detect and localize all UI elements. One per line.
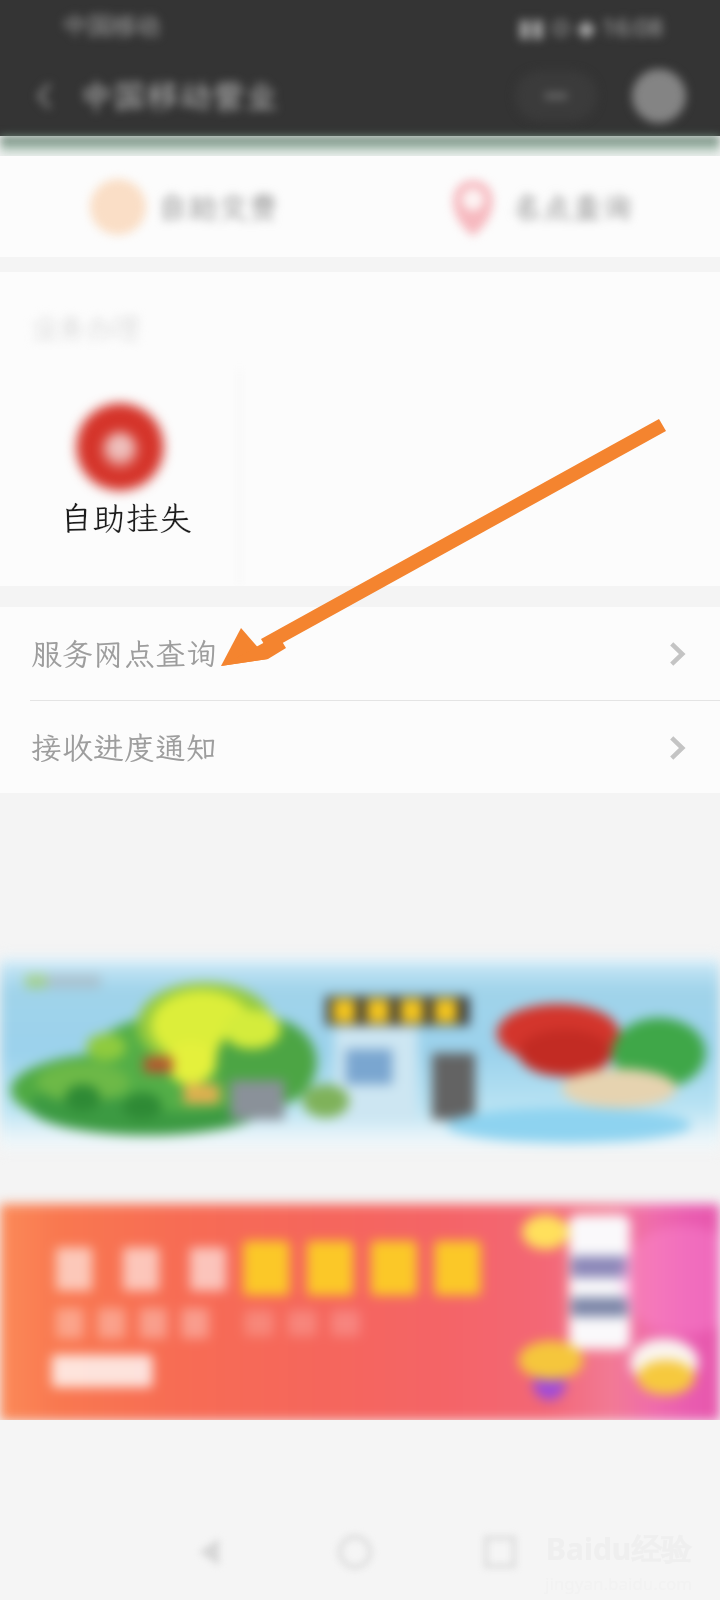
staticText: 名点查询: [512, 187, 632, 227]
button[interactable]: 名点查询: [360, 156, 720, 257]
button[interactable]: 自助交费: [0, 156, 360, 257]
button[interactable]: Account: [630, 68, 684, 122]
button[interactable]: Back: [170, 1512, 250, 1592]
button[interactable]: More options: [513, 70, 595, 120]
staticText: 自助挂失: [60, 496, 192, 539]
staticText: 自助交费: [158, 187, 278, 227]
staticText: 业务办理: [32, 312, 140, 346]
button[interactable]: Promotion banner: [0, 955, 720, 1151]
button[interactable]: Recent apps: [460, 1512, 540, 1592]
button[interactable]: 自助挂失: [0, 370, 239, 586]
button[interactable]: Home: [315, 1512, 395, 1592]
button[interactable]: Back: [10, 80, 78, 148]
staticText: ▮▮ ⊙ ◆ 16:08: [518, 10, 664, 43]
staticText: 中国移动: [64, 11, 160, 41]
button[interactable]: 接收进度通知: [0, 701, 720, 794]
staticText: 服务网点查询: [31, 633, 217, 674]
staticText: 中国移动营业: [80, 74, 278, 117]
staticText: 接收进度通知: [31, 727, 217, 768]
button[interactable]: 服务网点查询: [0, 607, 720, 700]
button[interactable]: Offer banner: [0, 1204, 720, 1421]
